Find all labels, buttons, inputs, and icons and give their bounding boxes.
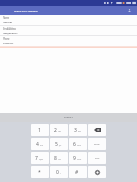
staticText: SUBMIT <box>64 116 73 119</box>
button[interactable]: Name <box>0 15 137 26</box>
staticText: Email Address <box>3 27 16 31</box>
button[interactable]: Done <box>88 138 106 150</box>
button[interactable]: 5 <box>50 138 68 150</box>
button[interactable]: 9 <box>69 152 87 164</box>
staticText: Phone <box>3 37 10 41</box>
staticText: 5 <box>55 141 58 148</box>
staticText: DEF <box>78 130 81 132</box>
staticText: JKL <box>59 144 62 146</box>
button[interactable]: 2 <box>50 124 68 136</box>
staticText: 3 <box>74 127 77 134</box>
button[interactable]: 8 <box>50 152 68 164</box>
staticText: Mike Smith <box>3 21 12 24</box>
staticText: GHI <box>40 144 43 146</box>
staticText: March 2017 meeting <box>14 9 38 12</box>
button[interactable]: Account <box>127 8 132 13</box>
button[interactable]: Keyboard settings <box>88 166 106 178</box>
staticText: 5125551234 <box>3 42 13 45</box>
staticText: Done <box>94 143 100 146</box>
staticText: 1 <box>38 127 41 134</box>
staticText: TUV <box>58 158 62 160</box>
button[interactable]: Phone <box>0 36 137 48</box>
staticText: Sym <box>95 157 100 160</box>
button[interactable]: * <box>31 166 49 178</box>
staticText: PQRS <box>39 158 44 160</box>
staticText: 0 <box>56 169 59 176</box>
staticText: 7 <box>35 155 38 162</box>
button[interactable]: 0 <box>50 166 68 178</box>
button[interactable]: Email Address <box>0 26 137 36</box>
staticText: * <box>38 169 41 176</box>
staticText: mike@gmail.com <box>3 32 18 35</box>
staticText: 6 <box>73 141 76 148</box>
button[interactable]: SUBMIT <box>0 113 137 122</box>
button[interactable]: Sym <box>88 152 106 164</box>
staticText: 2 <box>54 127 57 134</box>
button[interactable]: # <box>69 166 87 178</box>
button[interactable]: Backspace <box>88 124 106 136</box>
staticText: MNO <box>77 144 81 146</box>
staticText: 9 <box>73 155 76 162</box>
staticText: ABC <box>58 130 62 132</box>
staticText: WXYZ <box>77 158 82 160</box>
staticText: Name <box>3 16 9 20</box>
button[interactable]: 4 <box>31 138 49 150</box>
staticText: # <box>75 169 79 176</box>
staticText: 4 <box>36 141 39 148</box>
button[interactable]: 6 <box>69 138 87 150</box>
button[interactable]: 7 <box>31 152 49 164</box>
staticText: 8 <box>54 155 57 162</box>
staticText: + <box>60 172 61 174</box>
button[interactable]: 3 <box>69 124 87 136</box>
button[interactable]: 1 <box>31 124 49 136</box>
